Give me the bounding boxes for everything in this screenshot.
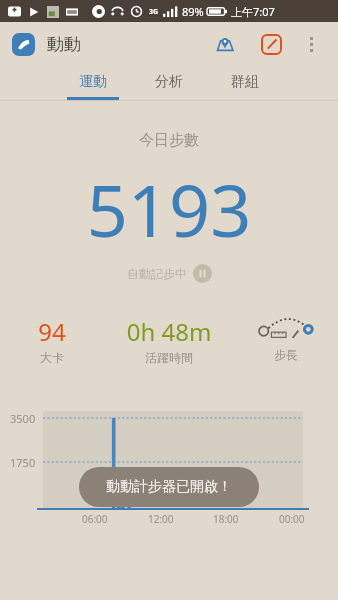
staticText: 動動計步器已開啟！ [106, 478, 232, 496]
button[interactable]: 步長 [234, 315, 338, 362]
button[interactable]: 94 [0, 315, 104, 365]
staticText: 大卡 [0, 350, 104, 365]
button[interactable]: 分析 [143, 66, 195, 100]
staticText: 12:00 [148, 512, 174, 526]
button[interactable]: Pause [193, 264, 212, 283]
staticText: 0h 48m [104, 315, 234, 348]
staticText: 運動 [67, 73, 119, 91]
staticText: 3500 [10, 411, 36, 426]
staticText: 動動 [47, 34, 81, 55]
staticText: 活躍時間 [104, 350, 234, 365]
staticText: 89% [182, 4, 204, 19]
staticText: 5193 [0, 160, 338, 258]
button[interactable]: Map [208, 27, 242, 61]
button[interactable]: Edit [254, 27, 288, 61]
button[interactable]: 0h 48m [104, 315, 234, 365]
staticText: 94 [0, 315, 104, 348]
staticText: 上午7:07 [231, 4, 275, 19]
staticText: 00:00 [279, 512, 305, 526]
staticText: 06:00 [82, 512, 108, 526]
staticText: 18:00 [213, 512, 239, 526]
button[interactable]: 群組 [219, 66, 271, 100]
button[interactable]: More options [296, 29, 326, 59]
button[interactable]: 運動 [67, 66, 119, 100]
staticText: 分析 [143, 73, 195, 91]
staticText: 1750 [10, 455, 36, 470]
staticText: 步長 [274, 347, 298, 362]
staticText: 自動記步中 [127, 266, 187, 281]
staticText: 今日步數 [0, 131, 338, 150]
staticText: 3G [149, 7, 159, 17]
staticText: 群組 [219, 73, 271, 91]
